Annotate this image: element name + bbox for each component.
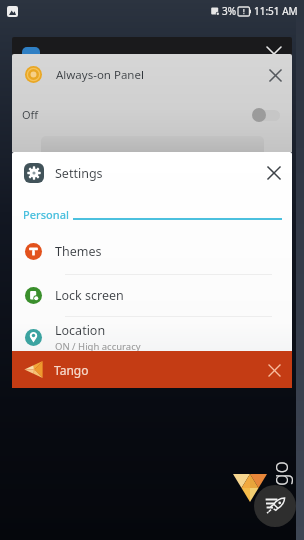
button[interactable]: Toggle Always-on Panel [252,108,280,122]
button[interactable]: Lock screen [12,274,292,317]
staticText: Location [55,322,106,339]
staticText: Off [22,107,39,122]
staticText: 3% [222,4,237,18]
button[interactable]: Tango [12,351,292,388]
button[interactable]: Off [12,95,292,134]
staticText: go [266,461,295,486]
staticText: Lock screen [55,287,124,304]
staticText: Tango [54,362,89,378]
button[interactable]: Close Always-on Panel [264,64,286,86]
staticText: 11:51 AM [254,4,298,18]
staticText: Always-on Panel [56,67,144,83]
button[interactable]: Themes [12,230,292,273]
staticText: Settings [55,165,103,182]
staticText: Themes [55,243,102,260]
staticText: Personal [23,207,69,222]
button[interactable]: Dismiss Tango [263,359,285,381]
button[interactable]: Close Settings [262,161,286,185]
button[interactable]: Boost [254,485,296,527]
staticText: ON / High accuracy [55,340,141,353]
button[interactable]: Location [12,316,292,359]
button[interactable]: Always-on Panel [12,54,292,95]
button[interactable]: Settings [12,152,292,194]
